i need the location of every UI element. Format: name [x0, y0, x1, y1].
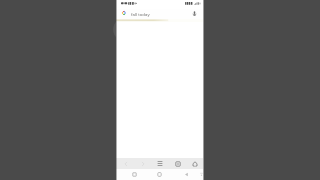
button[interactable]: Voice search [192, 10, 197, 17]
button[interactable]: Search or type URL [116, 9, 203, 19]
button[interactable]: Home [154, 169, 164, 179]
staticText: fall today [131, 11, 150, 17]
button[interactable]: Back [181, 169, 191, 179]
button[interactable]: Tabs [172, 158, 183, 169]
button[interactable]: Menu [154, 158, 165, 169]
button[interactable]: Rotate screen [196, 169, 206, 179]
button[interactable]: Recents [129, 169, 139, 179]
button[interactable]: Home [189, 158, 200, 169]
